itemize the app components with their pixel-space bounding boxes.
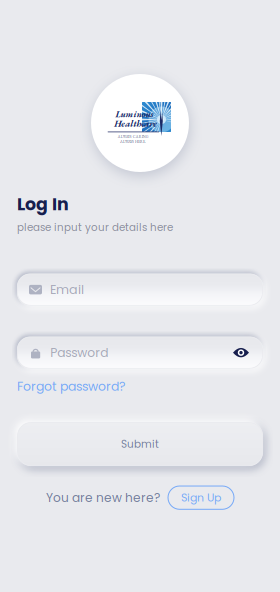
staticText: Healthcare xyxy=(114,117,157,130)
button[interactable]: Submit xyxy=(17,422,263,466)
button[interactable]: Forgot password? xyxy=(17,378,125,395)
staticText: Luminous xyxy=(115,108,153,120)
staticText: Password xyxy=(50,344,108,361)
staticText: You are new here? xyxy=(46,489,160,506)
staticText: Sign Up xyxy=(181,490,221,505)
staticText: ALWAYS CARING xyxy=(118,134,149,139)
button[interactable]: Sign Up xyxy=(168,486,234,509)
staticText: Forgot password? xyxy=(17,378,125,395)
staticText: Submit xyxy=(121,437,159,451)
staticText: Email xyxy=(50,281,84,298)
staticText: please input your details here xyxy=(17,220,173,235)
staticText: ALWAYS HERE. xyxy=(120,139,146,144)
staticText: Log In xyxy=(17,192,69,216)
